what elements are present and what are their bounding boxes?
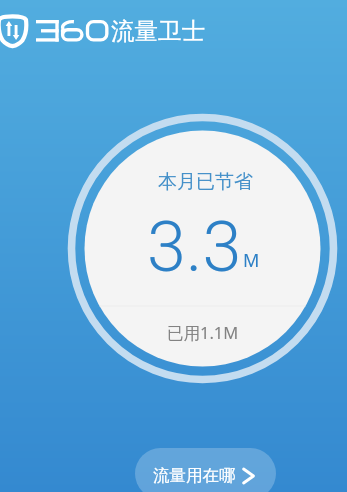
button[interactable]: 360 流量卫士	[0, 0, 210, 60]
staticText: 3.3	[147, 206, 242, 288]
staticText: M	[243, 248, 260, 273]
staticText: 本月已节省	[158, 170, 253, 194]
staticText: 流量卫士	[111, 16, 205, 46]
staticText: 流量用在哪	[153, 465, 236, 486]
button[interactable]: 流量用在哪	[135, 448, 276, 492]
staticText: 已用1.1M	[167, 321, 239, 344]
